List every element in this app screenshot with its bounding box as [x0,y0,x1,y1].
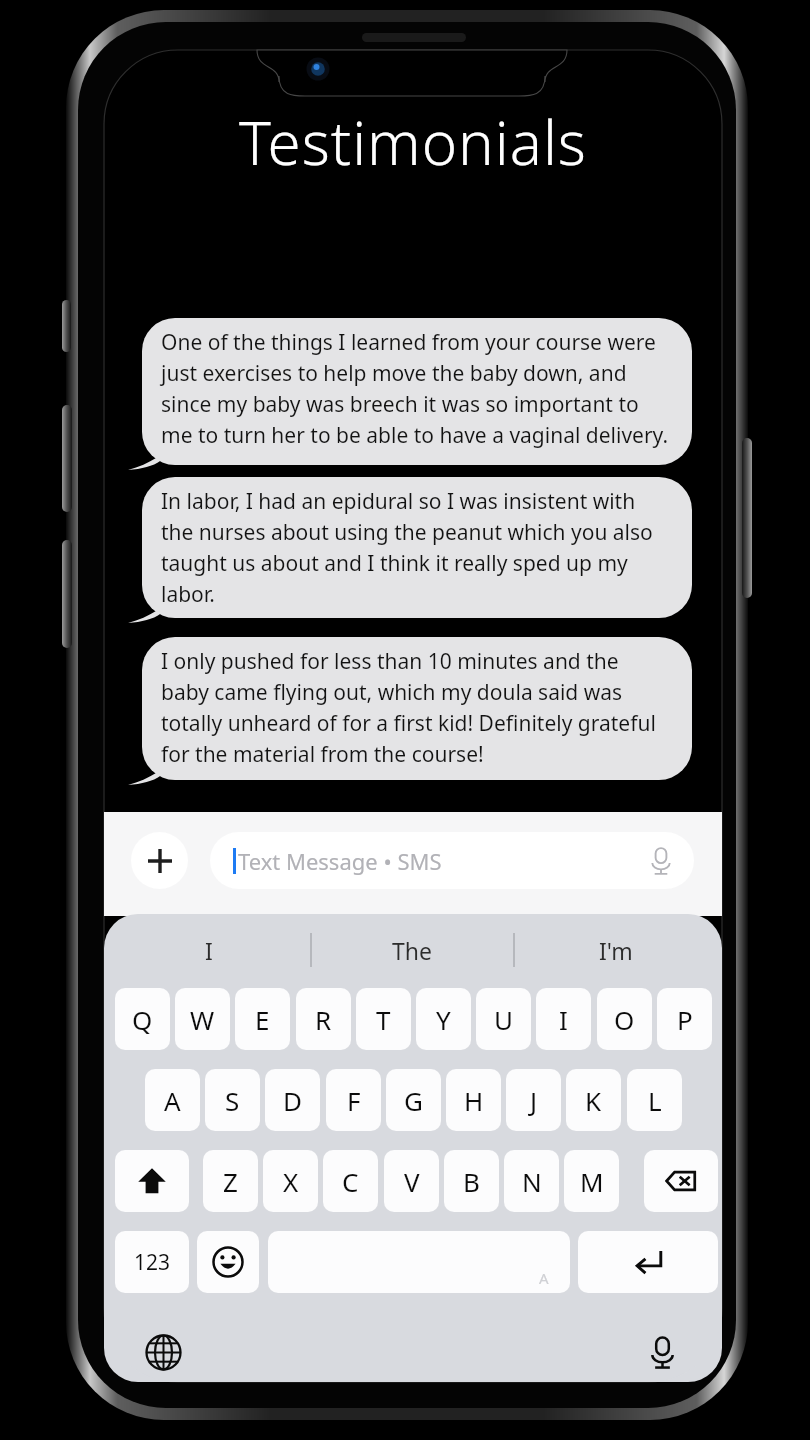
button[interactable]: H [446,1069,501,1131]
button[interactable]: X [263,1150,318,1212]
button[interactable]: O [597,988,652,1050]
button[interactable]: I [536,988,591,1050]
staticText: N [522,1164,542,1199]
button[interactable]: R [296,988,351,1050]
staticText: since my baby was breech it was so impor… [161,390,639,419]
button[interactable]: S [205,1069,260,1131]
button[interactable]: Emoji [197,1231,259,1293]
staticText: Y [436,1002,451,1037]
button[interactable]: U [476,988,531,1050]
button[interactable]: I only pushed for less than 10 minutes a… [142,637,692,780]
staticText: E [255,1002,270,1037]
staticText: A [539,1268,549,1288]
button[interactable]: Q [115,988,170,1050]
staticText: for the material from the course! [161,740,484,769]
staticText: I [205,935,213,966]
button[interactable]: Dictate [646,846,676,876]
staticText: D [283,1083,302,1118]
staticText: H [464,1083,484,1118]
button[interactable]: Voice input [636,1326,688,1378]
button[interactable]: One of the things I learned from your co… [142,318,692,465]
button[interactable]: 123 [115,1231,189,1293]
staticText: X [283,1164,299,1199]
button[interactable]: J [506,1069,561,1131]
button[interactable]: In labor, I had an epidural so I was ins… [142,477,692,618]
staticText: R [315,1002,332,1037]
staticText: I [559,1002,568,1037]
button[interactable]: B [444,1150,499,1212]
staticText: Text Message • SMS [238,846,442,876]
staticText: F [347,1083,361,1118]
staticText: S [225,1083,240,1118]
button[interactable]: Y [416,988,471,1050]
button[interactable]: I [114,924,304,976]
staticText: K [585,1083,602,1118]
button[interactable]: Z [203,1150,258,1212]
staticText: Testimonials [239,101,587,183]
staticText: In labor, I had an epidural so I was ins… [161,487,636,516]
staticText: B [463,1164,480,1199]
button[interactable]: M [564,1150,619,1212]
button[interactable]: Backspace [644,1150,718,1212]
staticText: I only pushed for less than 10 minutes a… [161,647,619,676]
button[interactable]: A [145,1069,200,1131]
button[interactable]: The [317,924,507,976]
staticText: baby came flying out, which my doula sai… [161,678,623,707]
button[interactable]: Text Message • SMS [210,832,694,889]
button[interactable]: E [235,988,290,1050]
staticText: O [614,1002,635,1037]
button[interactable]: Add attachment [131,832,188,889]
staticText: J [530,1083,538,1118]
staticText: totally unheard of for a first kid! Defi… [161,709,656,738]
staticText: U [494,1002,514,1037]
button[interactable]: D [265,1069,320,1131]
button[interactable]: C [323,1150,378,1212]
staticText: W [190,1002,215,1037]
staticText: 123 [134,1248,171,1277]
staticText: taught us about and I think it really sp… [161,549,628,578]
button[interactable]: Enter [578,1231,718,1293]
button[interactable]: P [657,988,712,1050]
staticText: Q [132,1002,153,1037]
button[interactable]: T [356,988,411,1050]
staticText: M [580,1164,604,1199]
staticText: A [164,1083,181,1118]
button[interactable]: G [386,1069,441,1131]
staticText: I'm [599,935,633,966]
staticText: me to turn her to be able to have a vagi… [161,421,669,450]
button[interactable]: L [627,1069,682,1131]
staticText: C [342,1164,359,1199]
staticText: just exercises to help move the baby dow… [161,359,627,388]
button[interactable]: V [384,1150,439,1212]
staticText: P [677,1002,693,1037]
button[interactable]: Change keyboard [137,1326,189,1378]
staticText: G [404,1083,423,1118]
button[interactable]: I'm [521,924,711,976]
button[interactable]: W [175,988,230,1050]
staticText: L [648,1083,662,1118]
staticText: The [392,935,432,966]
staticText: the nurses about using the peanut which … [161,518,653,547]
staticText: V [404,1164,420,1199]
button[interactable]: F [326,1069,381,1131]
staticText: labor. [161,580,215,609]
staticText: One of the things I learned from your co… [161,328,656,357]
staticText: T [376,1002,391,1037]
button[interactable]: K [566,1069,621,1131]
staticText: Z [223,1164,238,1199]
button[interactable]: Shift [115,1150,189,1212]
button[interactable]: N [504,1150,559,1212]
